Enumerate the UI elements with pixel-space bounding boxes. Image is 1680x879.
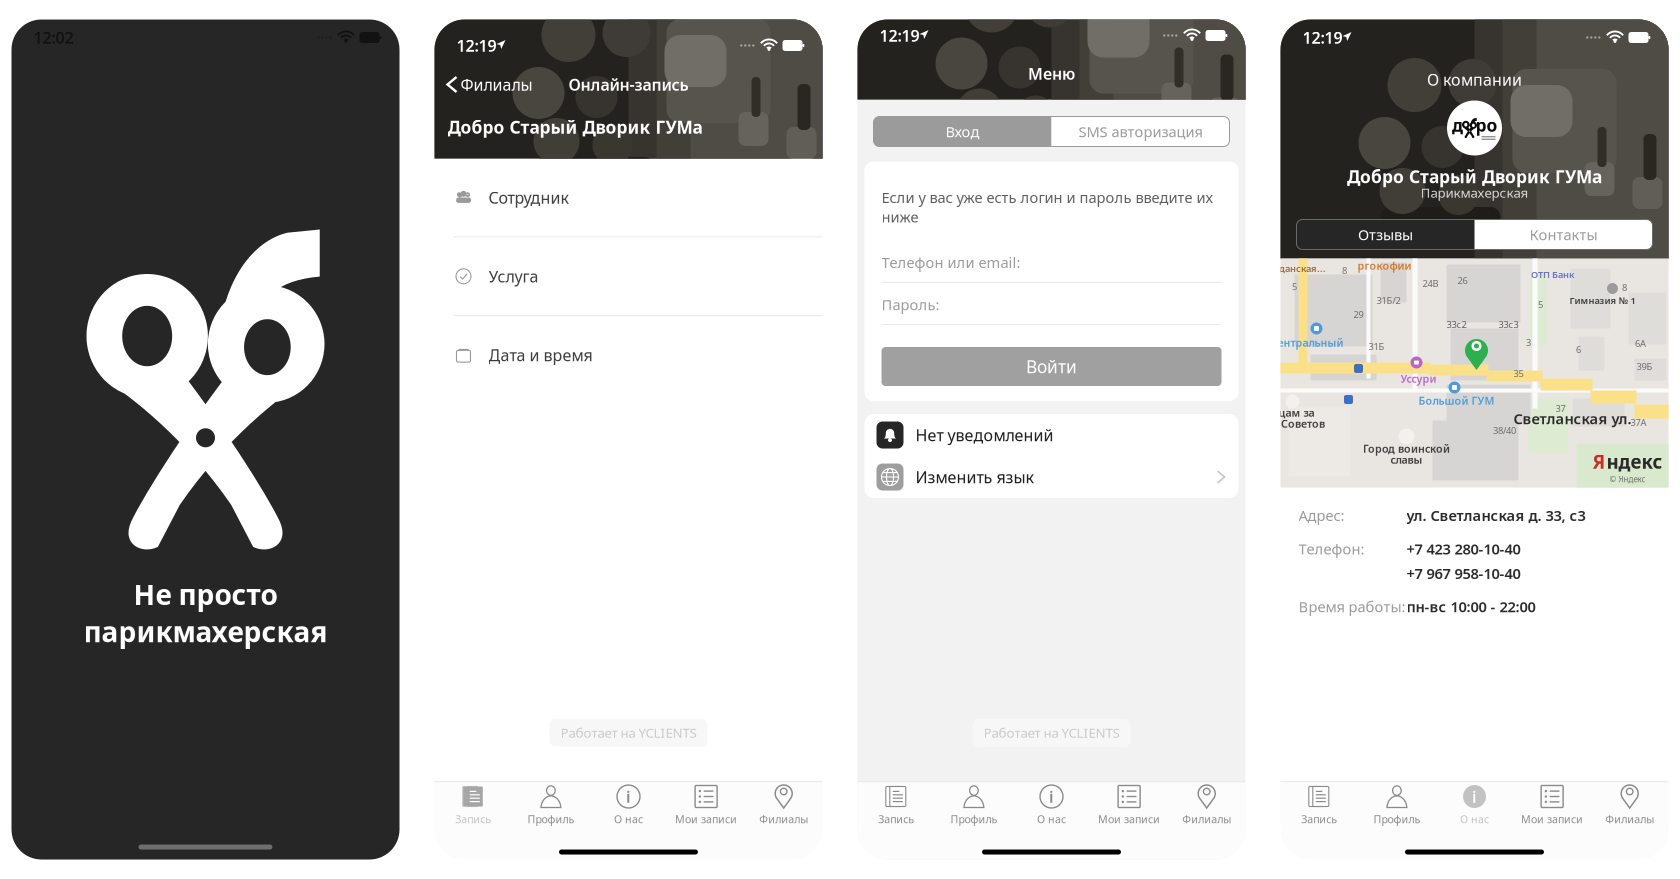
staticText: i (1472, 786, 1477, 807)
staticText: Мои записи (1098, 812, 1160, 826)
staticText: 35 (1513, 367, 1523, 380)
staticText: Филиалы (759, 812, 808, 826)
staticText: Добро Старый Дворик ГУМа (447, 115, 702, 138)
staticText: О компании (1427, 69, 1522, 90)
staticText: Если у вас уже есть логин и пароль введи… (881, 187, 1212, 226)
button[interactable]: Мои записи (667, 781, 745, 829)
staticText: ргокофии (1357, 258, 1411, 273)
staticText: О нас (1460, 812, 1489, 826)
button[interactable]: i (1436, 781, 1513, 829)
staticText: Войти (1026, 355, 1077, 378)
button[interactable]: Дата и время (434, 316, 822, 394)
staticText: цам за (1278, 405, 1314, 420)
staticText: SMS авторизация (1078, 122, 1202, 141)
staticText: Город воинской (1363, 441, 1450, 456)
button[interactable]: Услуга (434, 237, 822, 316)
staticText: Мои записи (1521, 812, 1583, 826)
button[interactable]: Профиль (512, 781, 590, 829)
staticText: 33с3 (1498, 318, 1518, 331)
button[interactable]: Отзывы (1296, 219, 1474, 249)
staticText: 8 (1622, 281, 1627, 294)
staticText: Уссури (1400, 371, 1436, 386)
staticText: Услуга (488, 266, 538, 287)
staticText: Запись (1301, 812, 1337, 826)
staticText: +7 967 958-10-40 (1406, 563, 1520, 583)
button[interactable]: Запись (857, 781, 935, 829)
button[interactable]: Профиль (1358, 781, 1436, 829)
button[interactable]: Сотрудник (434, 158, 822, 237)
staticText: Филиалы (1605, 812, 1654, 826)
staticText: Онлайн-запись (568, 74, 688, 95)
staticText: Контакты (1529, 225, 1597, 244)
button[interactable]: Мои записи (1090, 781, 1168, 829)
button[interactable]: SMS авторизация (1051, 116, 1229, 146)
button[interactable]: Мои записи (1513, 781, 1591, 829)
staticText: ро (1475, 113, 1497, 136)
staticText: Профиль (1373, 812, 1420, 826)
staticText: i (626, 786, 631, 807)
button[interactable]: Нет уведомлений (864, 414, 1238, 456)
staticText: Парикмахерская (1420, 184, 1528, 201)
staticText: Пароль: (881, 295, 939, 314)
staticText: Сотрудник (488, 187, 568, 208)
staticText: Запись (455, 812, 491, 826)
staticText: 6 (1576, 343, 1581, 356)
staticText: 24В (1422, 277, 1438, 290)
staticText: Я (1592, 449, 1605, 474)
staticText: ндекс (1606, 449, 1662, 474)
button[interactable]: Контакты (1474, 219, 1652, 249)
staticText: 39Б (1636, 360, 1652, 373)
staticText: д (1452, 113, 1463, 136)
staticText: Большой ГУМ (1418, 393, 1494, 408)
staticText: Работает на YCLIENTS (983, 724, 1119, 741)
staticText: 38/40 (1493, 424, 1516, 437)
button[interactable]: Филиалы (434, 63, 532, 105)
button[interactable]: Изменить язык (864, 456, 1238, 498)
staticText: i (1049, 786, 1054, 807)
button[interactable]: i (1013, 781, 1090, 829)
staticText: 26 (1457, 274, 1467, 287)
staticText: 29 (1353, 308, 1363, 321)
staticText: +7 423 280-10-40 (1406, 539, 1520, 558)
staticText: Дата и время (488, 344, 592, 366)
staticText: ул. Светланская д. 33, с3 (1406, 505, 1585, 525)
staticText: 12:19 (879, 25, 919, 46)
staticText: 12:19 (1302, 27, 1342, 48)
button[interactable]: i (590, 781, 667, 829)
staticText: Телефон или email: (881, 252, 1020, 272)
staticText: парикмахерская (83, 613, 327, 650)
staticText: 12:19 (456, 35, 496, 56)
staticText: Филиалы (460, 74, 532, 95)
staticText: жданская... (1271, 262, 1326, 275)
staticText: © Яндекс (1609, 474, 1645, 484)
button[interactable]: Вход (873, 116, 1051, 146)
staticText: Вход (945, 122, 979, 141)
staticText: Мои записи (675, 812, 737, 826)
button[interactable]: Запись (434, 781, 512, 829)
staticText: Гимназия № 1 (1569, 294, 1635, 307)
staticText: Центральный (1269, 335, 1343, 350)
button[interactable]: Филиалы (1591, 781, 1668, 829)
staticText: Филиалы (1182, 812, 1231, 826)
button[interactable]: Филиалы (745, 781, 822, 829)
staticText: 31Б (1368, 340, 1384, 353)
staticText: 37А (1630, 416, 1646, 429)
staticText: 8 (1342, 264, 1347, 277)
staticText: Телефон: (1298, 539, 1364, 558)
staticText: 37 (1555, 402, 1565, 415)
button[interactable]: Войти (881, 347, 1221, 386)
staticText: Запись (878, 812, 914, 826)
staticText: пн-вс 10:00 - 22:00 (1406, 597, 1535, 616)
staticText: Работает на YCLIENTS (560, 724, 696, 741)
button[interactable]: Запись (1280, 781, 1358, 829)
staticText: О нас (614, 812, 643, 826)
staticText: 31Б/2 (1376, 294, 1400, 307)
staticText: О нас (1037, 812, 1066, 826)
staticText: 5 (1538, 298, 1543, 311)
staticText: 12:02 (33, 27, 73, 48)
staticText: Профиль (950, 812, 997, 826)
staticText: 5 (1292, 280, 1297, 293)
button[interactable]: Профиль (935, 781, 1013, 829)
button[interactable]: Филиалы (1168, 781, 1245, 829)
staticText: Время работы: (1298, 597, 1405, 616)
